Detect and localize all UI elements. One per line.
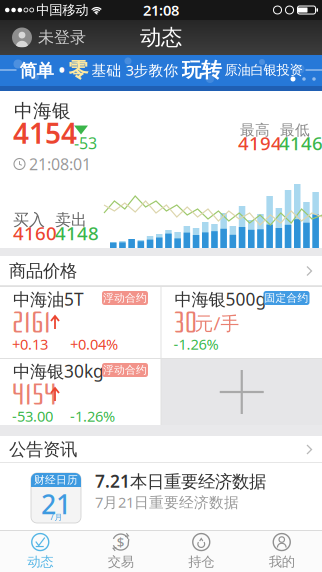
staticText: 中海银 <box>14 99 71 122</box>
staticText: -1.26% <box>173 334 218 354</box>
staticText: 简单 • <box>19 58 65 81</box>
staticText: 公告资讯 <box>9 439 77 460</box>
button[interactable]: 中海银30kg <box>0 359 160 425</box>
staticText: 浮动合约 <box>103 291 147 304</box>
staticText: 财经日历 <box>34 473 78 486</box>
staticText: 4194 <box>238 131 282 155</box>
staticText: 30 <box>173 306 197 340</box>
button[interactable]: 持仓 <box>161 530 241 572</box>
staticText: 7月 <box>49 512 62 522</box>
button[interactable]: 我的 <box>241 530 322 572</box>
staticText: 最高 <box>240 121 270 139</box>
staticText: 4154 <box>13 114 77 152</box>
staticText: 未登录 <box>38 28 86 47</box>
button[interactable]: 中海油5T <box>0 287 160 358</box>
button[interactable]: 未登录 <box>0 27 86 47</box>
button[interactable]: 财经日历 <box>0 463 322 530</box>
staticText: 21:08:01 <box>29 153 91 175</box>
staticText: 零 <box>68 58 88 82</box>
staticText: 玩转 <box>181 58 221 82</box>
staticText: -53 <box>74 132 97 154</box>
staticText: 中海银500g <box>174 287 266 310</box>
staticText: 7.21本日重要经济数据 <box>95 469 266 492</box>
staticText: 我的 <box>269 554 295 570</box>
staticText: 中海银30kg <box>13 359 104 382</box>
staticText: 21 <box>41 486 71 522</box>
staticText: 固定合约 <box>264 291 308 304</box>
button[interactable]: $ <box>80 530 161 572</box>
button[interactable]: 动态 <box>0 530 80 572</box>
button[interactable]: 简单 • <box>0 55 322 91</box>
staticText: 卖出 <box>55 210 87 230</box>
staticText: 持仓 <box>188 554 214 570</box>
staticText: -53.00 <box>12 406 53 426</box>
button[interactable]: 添加合约 <box>161 359 322 425</box>
button[interactable]: 商品价格 <box>0 256 322 286</box>
staticText: 4160 <box>13 221 57 245</box>
staticText: 中海油5T <box>13 287 84 310</box>
staticText: 7月21日重要经济数据 <box>95 492 239 512</box>
staticText: 浮动合约 <box>103 363 147 376</box>
staticText: 基础 3步教你 <box>91 60 178 80</box>
staticText: 4148 <box>55 221 99 245</box>
staticText: -1.26% <box>70 406 115 426</box>
staticText: 动态 <box>140 24 182 51</box>
staticText: 中国移动 <box>36 2 88 18</box>
staticText: 4154 <box>12 378 57 412</box>
staticText: 原油白银投资 <box>224 62 302 78</box>
staticText: 动态 <box>27 554 53 570</box>
staticText: 4146 <box>279 131 322 155</box>
staticText: +0.13 <box>12 334 48 354</box>
staticText: $ <box>117 533 125 551</box>
button[interactable]: 公告资讯 <box>0 436 322 463</box>
staticText: 买入 <box>13 210 45 230</box>
staticText: 21:08 <box>143 0 179 20</box>
staticText: +0.04% <box>70 334 118 354</box>
staticText: 交易 <box>108 554 134 570</box>
staticText: 2161 <box>12 306 51 340</box>
staticText: 商品价格 <box>9 260 77 282</box>
button[interactable]: 中海银500g <box>161 287 322 358</box>
staticText: 元/手 <box>194 311 239 335</box>
staticText: 最低 <box>280 121 310 139</box>
